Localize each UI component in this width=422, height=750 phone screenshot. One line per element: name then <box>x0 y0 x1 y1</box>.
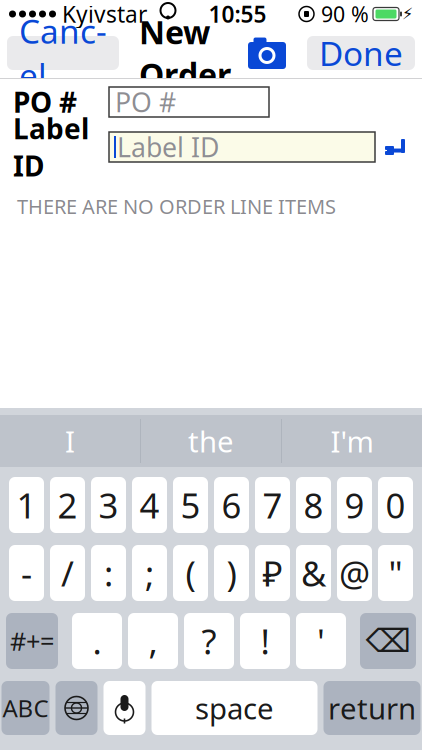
staticText: ⌫ <box>365 623 410 659</box>
button[interactable]: I <box>0 415 140 467</box>
staticText: 10:55 <box>208 0 266 29</box>
button[interactable]: space <box>151 681 317 735</box>
staticText: return <box>328 688 416 727</box>
button[interactable]: : <box>91 545 126 601</box>
button[interactable]: 2 <box>50 477 85 533</box>
staticText: ) <box>226 550 236 596</box>
staticText: #+= <box>10 624 54 658</box>
staticText: 5 <box>180 482 200 528</box>
staticText: ABC <box>2 692 48 724</box>
button[interactable]: ; <box>132 545 167 601</box>
staticText: & <box>301 550 326 596</box>
staticText: Done <box>319 31 403 75</box>
staticText: @ <box>339 550 370 596</box>
button[interactable]: / <box>50 545 85 601</box>
staticText <box>147 0 159 29</box>
button[interactable]: ' <box>296 613 346 669</box>
button[interactable]: Submit Label ID <box>383 135 422 159</box>
button[interactable]: Next Keyboard <box>55 681 97 735</box>
staticText: 6 <box>221 482 241 528</box>
button[interactable]: 9 <box>337 477 372 533</box>
button[interactable]: Label ID <box>109 132 375 162</box>
button[interactable]: 8 <box>296 477 331 533</box>
button[interactable]: 4 <box>132 477 167 533</box>
staticText: ! <box>260 618 269 664</box>
button[interactable]: 7 <box>255 477 290 533</box>
staticText: - <box>21 550 32 596</box>
button[interactable]: I'm <box>282 415 422 467</box>
staticText: ⚡︎ <box>402 5 413 23</box>
button[interactable]: Delete <box>360 613 416 669</box>
staticText: space <box>195 688 274 727</box>
staticText: 90 % <box>315 0 369 28</box>
button[interactable]: ₽ <box>255 545 290 601</box>
button[interactable]: . <box>72 613 122 669</box>
staticText: 0 <box>385 482 405 528</box>
staticText: 7 <box>262 482 282 528</box>
staticText: ₽ <box>262 550 282 596</box>
button[interactable]: Done <box>307 36 415 70</box>
staticText: New Order <box>139 10 231 95</box>
staticText: . <box>92 618 101 664</box>
staticText: Cancel <box>19 9 107 97</box>
button[interactable]: 6 <box>214 477 249 533</box>
staticText: ? <box>201 618 216 664</box>
staticText: Label ID <box>117 129 219 165</box>
staticText: 3 <box>98 482 118 528</box>
staticText: PO # <box>13 83 77 121</box>
button[interactable]: Take Photo <box>247 36 287 70</box>
staticText: " <box>388 550 402 596</box>
staticText: ' <box>317 618 325 664</box>
button[interactable]: ? <box>184 613 234 669</box>
button[interactable]: @ <box>337 545 372 601</box>
button[interactable]: ( <box>173 545 208 601</box>
button[interactable]: 0 <box>378 477 413 533</box>
staticText: / <box>61 550 74 596</box>
button[interactable]: & <box>296 545 331 601</box>
button[interactable]: 3 <box>91 477 126 533</box>
button[interactable]: 1 <box>9 477 44 533</box>
button[interactable]: 5 <box>173 477 208 533</box>
staticText: Kyivstar <box>56 0 147 29</box>
button[interactable]: Dictation <box>103 681 145 735</box>
staticText: 2 <box>57 482 77 528</box>
staticText: ; <box>145 550 154 596</box>
staticText: 4 <box>139 482 159 528</box>
button[interactable]: " <box>378 545 413 601</box>
button[interactable]: - <box>9 545 44 601</box>
button[interactable]: the <box>141 415 281 467</box>
button[interactable]: ) <box>214 545 249 601</box>
button[interactable]: return <box>323 681 420 735</box>
staticText: PO # <box>115 84 176 120</box>
button[interactable]: #+= <box>6 613 58 669</box>
staticText: Label ID <box>13 110 89 184</box>
staticText: I <box>65 421 75 460</box>
staticText: THERE ARE NO ORDER LINE ITEMS <box>17 193 336 220</box>
staticText: 8 <box>303 482 323 528</box>
button[interactable]: ABC <box>1 681 49 735</box>
staticText: , <box>148 618 157 664</box>
staticText: the <box>188 421 234 460</box>
staticText: : <box>104 550 113 596</box>
button[interactable]: Cancel <box>7 36 119 70</box>
button[interactable]: , <box>128 613 178 669</box>
staticText: 9 <box>344 482 364 528</box>
button[interactable]: PO # <box>109 87 269 117</box>
staticText: ( <box>185 550 195 596</box>
button[interactable]: ! <box>240 613 290 669</box>
staticText: 1 <box>16 482 36 528</box>
staticText: I'm <box>330 421 373 460</box>
